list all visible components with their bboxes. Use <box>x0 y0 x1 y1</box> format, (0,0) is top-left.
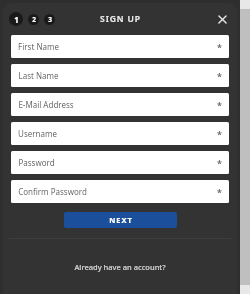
button[interactable]: Last Name <box>11 64 229 87</box>
button[interactable]: Confirm Password <box>11 180 229 203</box>
button[interactable]: NEXT <box>64 212 177 228</box>
staticText: First Name <box>18 41 59 52</box>
button[interactable]: 1 <box>9 12 23 26</box>
button[interactable]: Close <box>213 10 231 28</box>
staticText: Already have an account? <box>74 262 166 272</box>
staticText: * <box>217 186 222 198</box>
button[interactable]: First Name <box>11 35 229 58</box>
staticText: 2 <box>32 15 36 24</box>
staticText: E-Mail Address <box>18 99 74 110</box>
staticText: * <box>217 99 222 111</box>
button[interactable]: 2 <box>28 14 39 25</box>
staticText: * <box>217 70 222 82</box>
button[interactable]: Password <box>11 151 229 174</box>
staticText: * <box>217 41 222 53</box>
button[interactable]: 3 <box>44 14 55 25</box>
button[interactable]: Username <box>11 122 229 145</box>
staticText: 1 <box>14 14 19 25</box>
staticText: * <box>217 128 222 140</box>
staticText: 3 <box>48 15 52 24</box>
button[interactable]: Already have an account? <box>68 259 172 275</box>
staticText: Username <box>18 128 57 139</box>
staticText: SIGN UP <box>100 13 141 25</box>
staticText: Last Name <box>18 70 59 81</box>
staticText: Password <box>18 157 55 168</box>
staticText: NEXT <box>109 215 133 225</box>
staticText: Confirm Password <box>18 186 87 197</box>
button[interactable]: E-Mail Address <box>11 93 229 116</box>
staticText: * <box>217 157 222 169</box>
